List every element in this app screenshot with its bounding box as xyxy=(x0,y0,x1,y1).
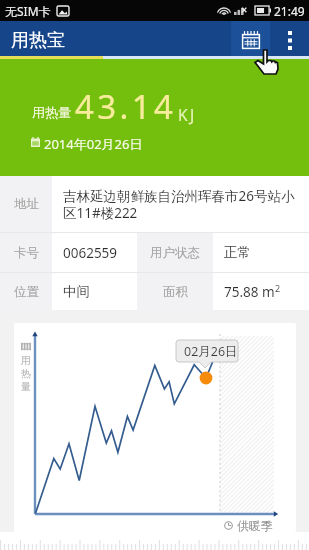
staticText: 用热量 xyxy=(32,104,71,120)
staticText: 卡号 xyxy=(14,245,39,261)
staticText: 位置 xyxy=(14,284,39,300)
staticText: 正常 xyxy=(224,244,251,261)
staticText: 吉林延边朝鲜族自治州珲春市26号站小区11#楼222 xyxy=(63,187,297,222)
staticText: 用户状态 xyxy=(150,245,200,261)
staticText: 2 xyxy=(275,282,281,294)
staticText: 面积 xyxy=(163,284,188,300)
staticText: 地址 xyxy=(14,196,39,212)
button[interactable]: Calendar xyxy=(231,21,270,59)
staticText: KJ xyxy=(178,104,197,125)
staticText: 热 xyxy=(21,367,31,380)
staticText: 0062559 xyxy=(63,244,118,262)
staticText: 供暖季 xyxy=(237,518,273,532)
staticText: 43.14 xyxy=(75,84,177,129)
staticText: 21:49 xyxy=(274,3,305,19)
staticText: 2014年02月26日 xyxy=(44,135,143,153)
button[interactable]: More options xyxy=(270,21,309,59)
staticText: 无SIM卡 xyxy=(5,3,51,19)
staticText: 用 xyxy=(21,354,31,367)
staticText: 75.88 m xyxy=(224,283,275,301)
staticText: 用热宝 xyxy=(11,29,65,52)
staticText: 中间 xyxy=(63,283,90,300)
staticText: 量 xyxy=(21,380,31,393)
staticText: 02月26日 xyxy=(184,343,238,360)
